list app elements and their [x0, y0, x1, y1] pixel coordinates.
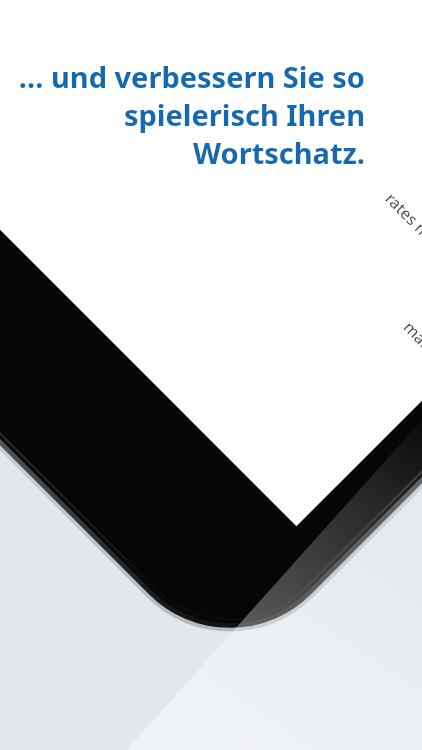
- staticText: … und verbessern Sie so spielerisch Ihre…: [18, 57, 365, 172]
